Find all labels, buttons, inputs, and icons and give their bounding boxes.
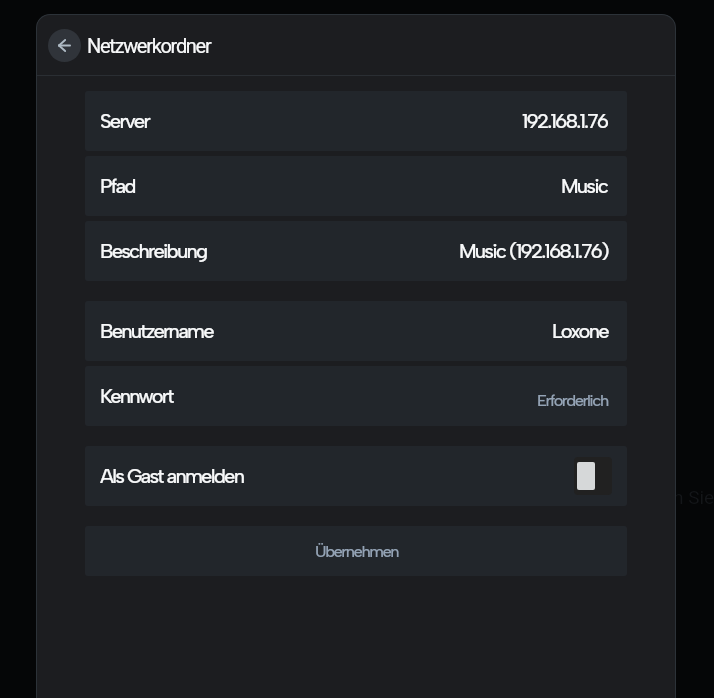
button[interactable]: Als Gast anmelden [574,457,612,495]
button[interactable]: Beschreibung [85,221,627,281]
staticText: Music [561,174,608,198]
staticText: Als Gast anmelden [100,464,244,488]
staticText: Pfad [100,174,135,198]
button[interactable]: Server [85,91,627,151]
staticText: 192.168.1.76 [522,109,608,133]
button[interactable]: Benutzername [85,301,627,361]
staticText: n Sie [673,486,714,508]
staticText: Loxone [552,319,608,343]
staticText: Übernehmen [315,541,398,561]
button[interactable]: Als Gast anmelden [85,446,627,506]
button[interactable]: Übernehmen [85,526,627,576]
staticText: Music (192.168.1.76) [459,239,608,263]
button[interactable]: Kennwort [85,366,627,426]
button[interactable]: Pfad [85,156,627,216]
staticText: Erforderlich [537,390,608,410]
staticText: Beschreibung [100,239,207,263]
staticText: Benutzername [100,319,213,343]
staticText: Kennwort [100,384,173,408]
staticText: Server [100,109,149,133]
staticText: Netzwerkordner [87,34,211,57]
button[interactable]: Back [48,29,81,62]
